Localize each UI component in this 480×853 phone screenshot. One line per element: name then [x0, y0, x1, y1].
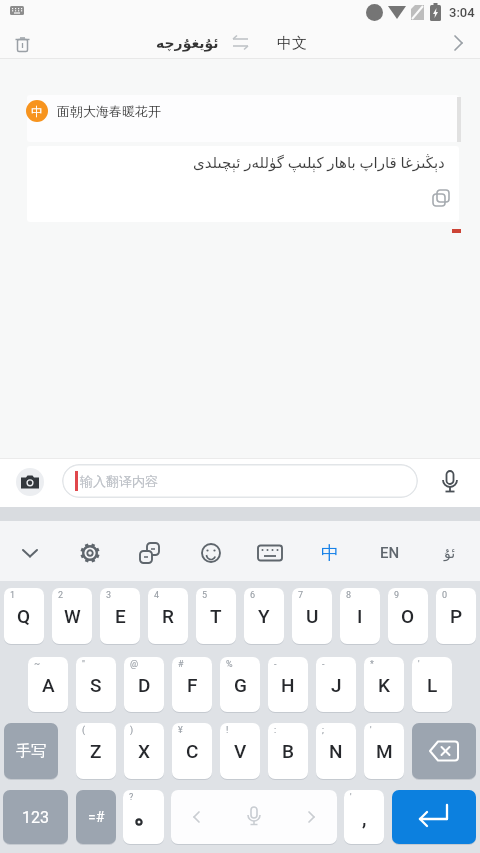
staticText: )	[130, 725, 134, 736]
staticText: R	[162, 605, 174, 627]
button[interactable]: 5	[196, 588, 236, 644]
staticText: دېڭىزغا قاراپ باھار كېلىپ گۈللەر ئېچىلدى	[193, 154, 445, 172]
button[interactable]: 9	[388, 588, 428, 644]
staticText: ;	[322, 725, 324, 736]
staticText: %	[226, 659, 233, 670]
staticText: '	[370, 725, 372, 736]
button[interactable]	[446, 31, 470, 55]
button[interactable]: 2	[52, 588, 92, 644]
button[interactable]: دېڭىزغا قاراپ باھار كېلىپ گۈللەر ئېچىلدى	[27, 146, 459, 222]
staticText: -	[274, 659, 277, 670]
staticText: L	[427, 674, 438, 696]
button[interactable]	[136, 539, 164, 567]
staticText: X	[138, 740, 151, 762]
button[interactable]: 输入翻译内容	[62, 464, 418, 498]
button[interactable]	[171, 790, 337, 844]
staticText: ئۇيغۇرچە	[156, 35, 219, 51]
button[interactable]	[16, 539, 44, 567]
button[interactable]: ;	[316, 723, 356, 779]
button[interactable]: 手写	[4, 723, 58, 779]
button[interactable]: 4	[148, 588, 188, 644]
staticText: -	[322, 659, 325, 670]
button[interactable]: !	[220, 723, 260, 779]
staticText: ?	[129, 792, 134, 803]
staticText: Y	[258, 605, 270, 627]
staticText: 输入翻译内容	[80, 473, 158, 489]
staticText: 中	[321, 542, 339, 565]
button[interactable]: *	[364, 657, 404, 712]
staticText: *	[370, 659, 374, 670]
button[interactable]: -	[268, 657, 308, 712]
staticText: 0	[442, 590, 448, 601]
staticText: ¥	[178, 725, 183, 736]
staticText: U	[306, 605, 319, 627]
button[interactable]: -	[316, 657, 356, 712]
button[interactable]: 7	[292, 588, 332, 644]
staticText: 7	[298, 590, 304, 601]
staticText: V	[234, 740, 247, 762]
button[interactable]: 3	[100, 588, 140, 644]
staticText: 3	[106, 590, 112, 601]
staticText: G	[234, 674, 247, 696]
button[interactable]: (	[76, 723, 116, 779]
staticText: D	[138, 674, 151, 696]
button[interactable]: :	[268, 723, 308, 779]
staticText: '	[418, 659, 420, 670]
button[interactable]: 中	[316, 539, 344, 567]
staticText: 9	[394, 590, 400, 601]
staticText: 5	[202, 590, 208, 601]
staticText: 8	[346, 590, 352, 601]
staticText: Q	[17, 605, 31, 627]
button[interactable]: 中	[26, 100, 48, 122]
button[interactable]: #	[172, 657, 212, 712]
staticText: :	[274, 725, 277, 736]
button[interactable]	[412, 723, 476, 779]
staticText: W	[64, 605, 81, 627]
button[interactable]: ئۇ	[436, 539, 464, 567]
staticText: 123	[22, 808, 49, 827]
button[interactable]: ?	[123, 790, 164, 844]
staticText: H	[281, 674, 295, 696]
button[interactable]: 8	[340, 588, 380, 644]
button[interactable]	[255, 539, 285, 567]
button[interactable]: '	[364, 723, 404, 779]
staticText: =#	[88, 809, 105, 825]
button[interactable]	[16, 468, 44, 496]
button[interactable]: '	[412, 657, 452, 712]
staticText: ~	[34, 659, 41, 670]
staticText: J	[331, 674, 342, 696]
staticText: E	[115, 605, 126, 627]
button[interactable]: )	[124, 723, 164, 779]
staticText: (	[82, 725, 86, 736]
button[interactable]: 0	[436, 588, 476, 644]
button[interactable]: =#	[76, 790, 116, 844]
staticText: P	[450, 605, 463, 627]
button[interactable]	[436, 468, 464, 496]
button[interactable]: 6	[244, 588, 284, 644]
staticText: C	[186, 740, 199, 762]
staticText: ,	[362, 806, 367, 829]
staticText: K	[378, 674, 390, 696]
staticText: 面朝大海春暖花开	[57, 103, 161, 119]
button[interactable]	[230, 33, 251, 53]
staticText: 手写	[16, 742, 46, 761]
staticText: '	[350, 792, 352, 803]
button[interactable]	[197, 539, 225, 567]
button[interactable]: "	[76, 657, 116, 712]
button[interactable]: @	[124, 657, 164, 712]
button[interactable]: '	[344, 790, 384, 844]
button[interactable]: EN	[374, 539, 406, 567]
button[interactable]: 中文	[262, 30, 322, 56]
button[interactable]: %	[220, 657, 260, 712]
button[interactable]: 1	[4, 588, 44, 644]
button[interactable]	[76, 539, 104, 567]
staticText: B	[282, 740, 294, 762]
button[interactable]: ¥	[172, 723, 212, 779]
button[interactable]	[392, 790, 476, 844]
button[interactable]: ئۇيغۇرچە	[140, 30, 234, 56]
button[interactable]: ~	[28, 657, 68, 712]
staticText: 中	[31, 104, 43, 119]
button[interactable]: 123	[3, 790, 68, 844]
button[interactable]	[8, 29, 38, 57]
staticText: Z	[90, 740, 102, 762]
